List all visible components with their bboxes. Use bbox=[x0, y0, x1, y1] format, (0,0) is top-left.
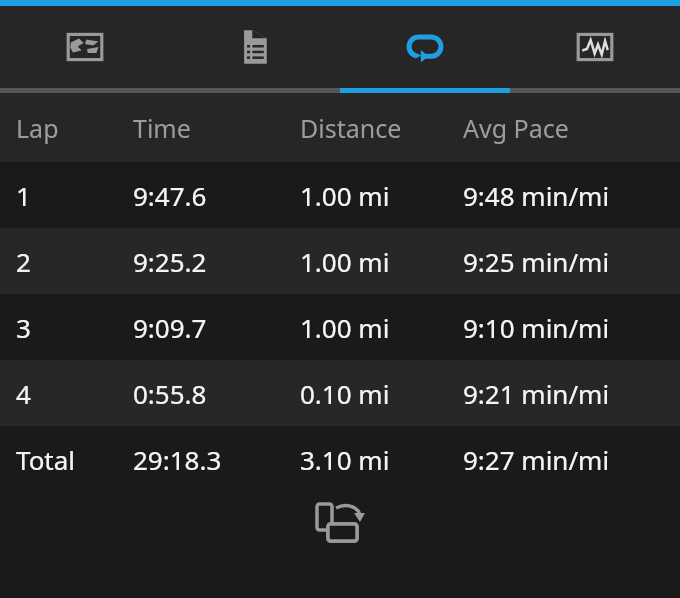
staticText: Lap bbox=[16, 111, 59, 145]
staticText: 29:18.3 bbox=[133, 442, 222, 477]
staticText: Time bbox=[133, 111, 191, 145]
button[interactable]: 3 bbox=[0, 294, 680, 360]
staticText: 4 bbox=[16, 376, 31, 411]
staticText: Total bbox=[16, 442, 76, 477]
staticText: 9:47.6 bbox=[133, 178, 207, 213]
staticText: 3 bbox=[16, 310, 31, 345]
staticText: 0.10 mi bbox=[300, 376, 390, 411]
button[interactable]: Rotate screen orientation bbox=[306, 492, 374, 560]
staticText: 1.00 mi bbox=[300, 310, 390, 345]
staticText: Distance bbox=[300, 111, 402, 145]
staticText: 9:25 min/mi bbox=[463, 244, 610, 279]
button[interactable]: Map route bbox=[0, 6, 170, 88]
staticText: Avg Pace bbox=[463, 111, 569, 145]
staticText: 0:55.8 bbox=[133, 376, 207, 411]
staticText: 3.10 mi bbox=[300, 442, 390, 477]
staticText: 2 bbox=[16, 244, 31, 279]
staticText: 9:10 min/mi bbox=[463, 310, 610, 345]
staticText: 9:09.7 bbox=[133, 310, 207, 345]
staticText: 9:27 min/mi bbox=[463, 442, 610, 477]
staticText: 9:21 min/mi bbox=[463, 376, 610, 411]
staticText: 9:25.2 bbox=[133, 244, 207, 279]
button[interactable]: Graphs bbox=[510, 6, 680, 88]
staticText: 1 bbox=[16, 178, 31, 213]
button[interactable]: Laps bbox=[340, 6, 510, 88]
button[interactable]: 2 bbox=[0, 228, 680, 294]
staticText: 9:48 min/mi bbox=[463, 178, 610, 213]
staticText: 1.00 mi bbox=[300, 178, 390, 213]
button[interactable]: 1 bbox=[0, 162, 680, 228]
button[interactable]: 4 bbox=[0, 360, 680, 426]
button[interactable]: Workout details bbox=[170, 6, 340, 88]
staticText: 1.00 mi bbox=[300, 244, 390, 279]
